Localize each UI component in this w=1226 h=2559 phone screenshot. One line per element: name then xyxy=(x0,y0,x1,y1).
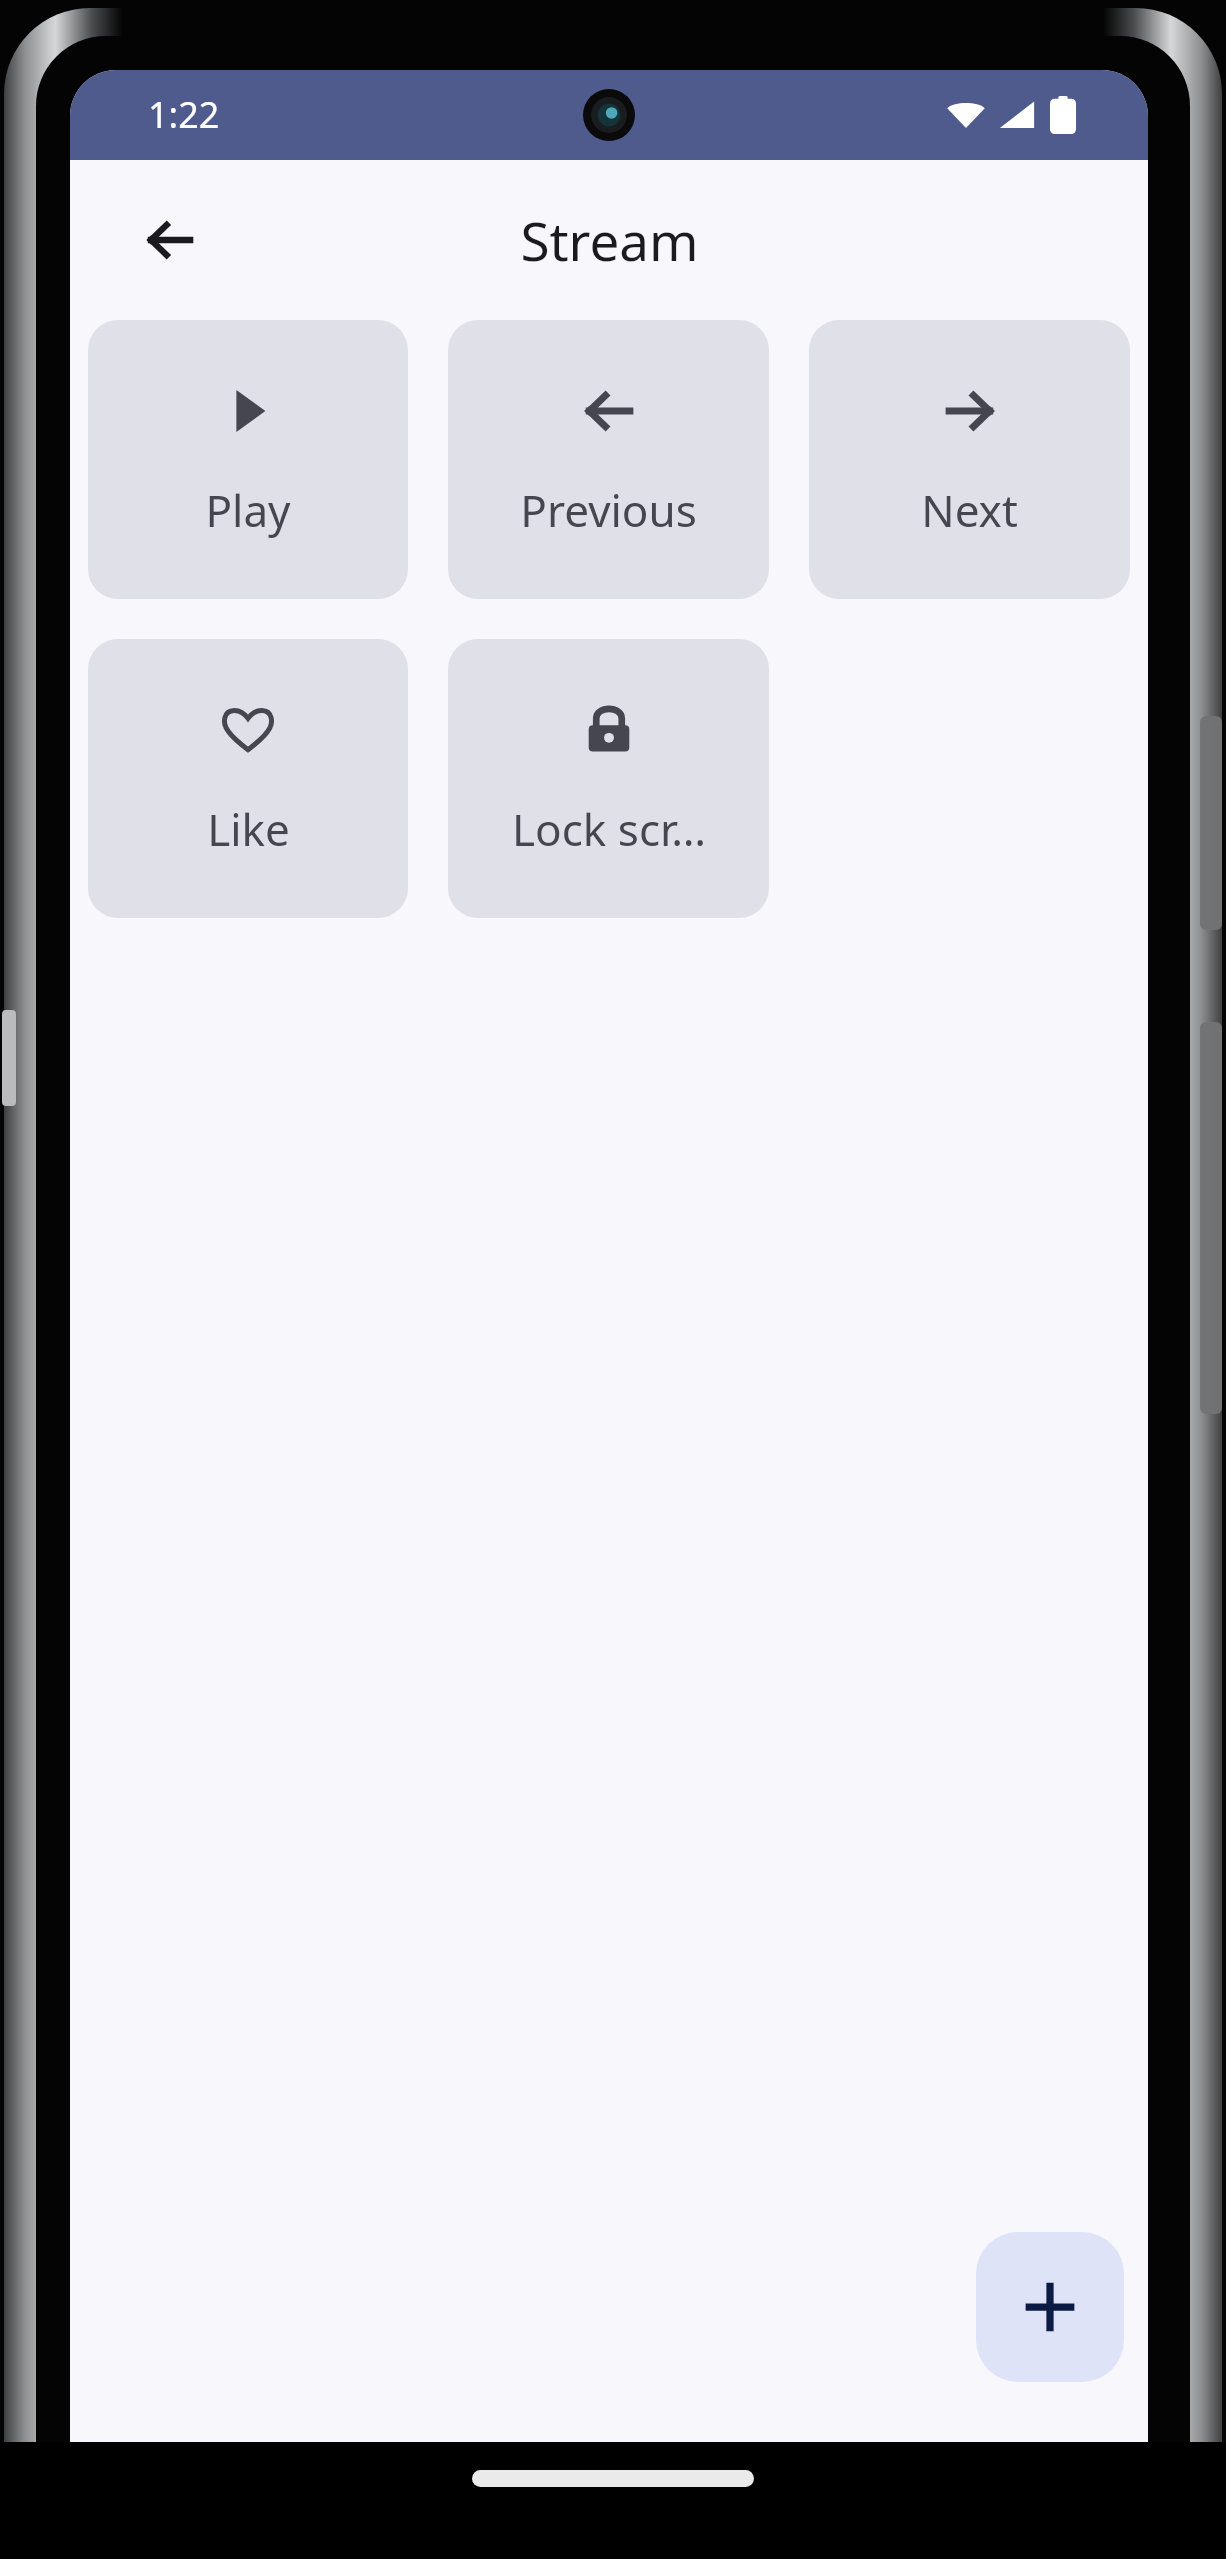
staticText: 1:22 xyxy=(148,90,220,139)
button[interactable]: Play xyxy=(88,320,408,599)
staticText: Like xyxy=(207,799,290,859)
staticText: Lock scr… xyxy=(512,799,706,859)
button[interactable]: Add xyxy=(976,2232,1124,2382)
staticText: Previous xyxy=(520,480,697,540)
staticText: Stream xyxy=(520,204,699,276)
button[interactable]: Next xyxy=(809,320,1130,599)
button[interactable]: Lock scr… xyxy=(448,639,769,918)
button[interactable]: Back xyxy=(122,192,218,288)
staticText: Play xyxy=(205,480,291,540)
button[interactable]: Like xyxy=(88,639,408,918)
button[interactable]: Previous xyxy=(448,320,769,599)
staticText: Next xyxy=(921,480,1018,540)
